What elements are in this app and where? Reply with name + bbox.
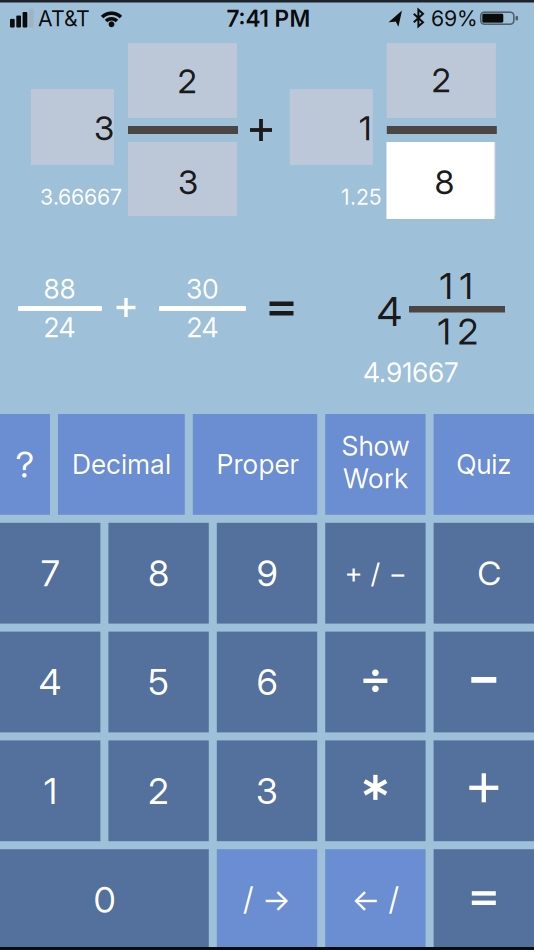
button[interactable]: / →	[217, 849, 317, 950]
button[interactable]: 1	[0, 740, 100, 841]
staticText: 4	[39, 661, 62, 703]
button[interactable]: ← /	[325, 849, 426, 950]
button[interactable]	[434, 740, 534, 841]
button[interactable]	[325, 632, 426, 732]
staticText: ?	[15, 443, 34, 486]
staticText: 12	[437, 310, 478, 353]
staticText: 5	[148, 661, 169, 703]
staticText: 3	[94, 108, 114, 148]
staticText: Quiz	[456, 449, 511, 480]
button[interactable]	[128, 43, 237, 118]
button[interactable]: Decimal	[58, 414, 185, 515]
staticText: 30	[186, 273, 219, 305]
button[interactable]	[434, 849, 534, 950]
button[interactable]: Proper	[193, 414, 317, 515]
staticText: Work	[343, 463, 408, 494]
staticText: C	[477, 553, 501, 593]
staticText: 1	[44, 770, 57, 812]
staticText: 1.25	[341, 184, 382, 210]
staticText: Proper	[216, 449, 299, 480]
button[interactable]: 7	[0, 523, 100, 624]
button[interactable]: 5	[108, 632, 209, 732]
staticText: 3	[178, 162, 198, 202]
staticText: 2	[148, 770, 169, 812]
staticText: 4.91667	[363, 357, 459, 388]
button[interactable]	[386, 142, 494, 219]
staticText: 4	[377, 288, 402, 335]
staticText: 1	[359, 108, 372, 148]
staticText: 24	[186, 312, 218, 343]
button[interactable]: 0	[0, 849, 209, 950]
button[interactable]	[31, 89, 114, 165]
staticText: 24	[43, 312, 75, 343]
staticText: 7	[41, 552, 60, 594]
button[interactable]	[387, 43, 496, 118]
button[interactable]: Show	[325, 414, 426, 515]
staticText: 2	[177, 61, 196, 101]
staticText: 7:41 PM	[226, 5, 310, 32]
staticText: 8	[148, 552, 169, 594]
staticText: 0	[93, 878, 115, 921]
button[interactable]: 4	[0, 632, 100, 732]
button[interactable]: Quiz	[434, 414, 534, 515]
staticText: 2	[431, 60, 450, 100]
staticText: 9	[256, 552, 277, 594]
button[interactable]	[290, 89, 373, 165]
staticText: AT&T	[38, 6, 90, 31]
button[interactable]: 2	[108, 740, 209, 841]
button[interactable]: 3	[217, 740, 317, 841]
staticText: 8	[434, 162, 454, 202]
staticText: ← /	[351, 881, 399, 918]
button[interactable]: C	[434, 523, 534, 624]
staticText: 11	[439, 265, 472, 307]
staticText: 88	[43, 273, 75, 305]
staticText: Show	[341, 430, 409, 462]
button[interactable]	[128, 142, 237, 216]
button[interactable]: 9	[217, 523, 317, 624]
staticText: 6	[256, 661, 277, 703]
staticText: 69%	[431, 6, 478, 31]
button[interactable]	[325, 740, 426, 841]
staticText: 3.66667	[40, 184, 122, 210]
button[interactable]: + / −	[325, 523, 426, 624]
button[interactable]: 6	[217, 632, 317, 732]
button[interactable]	[387, 142, 496, 216]
button[interactable]	[434, 632, 534, 732]
button[interactable]: ?	[0, 414, 50, 515]
button[interactable]: 8	[108, 523, 209, 624]
staticText: + / −	[344, 557, 406, 590]
staticText: / →	[243, 881, 291, 918]
staticText: Decimal	[72, 449, 171, 480]
staticText: 3	[256, 770, 278, 812]
